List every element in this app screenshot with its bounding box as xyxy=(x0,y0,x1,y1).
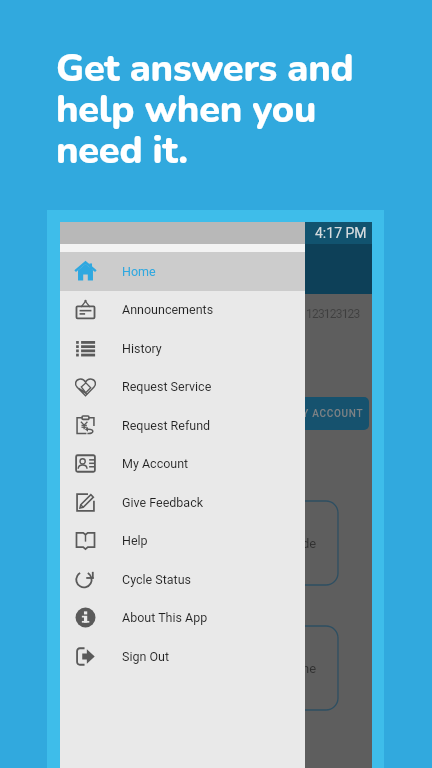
button[interactable]: de xyxy=(240,501,338,585)
button[interactable]: Request Service xyxy=(60,367,305,406)
staticText: Sign Out xyxy=(122,649,170,664)
staticText: Give Feedback xyxy=(122,495,204,510)
staticText: Help xyxy=(122,533,148,548)
staticText: ne xyxy=(302,661,317,676)
staticText: Get answers and xyxy=(56,43,354,95)
staticText: Announcements xyxy=(122,302,214,317)
button[interactable]: About This App xyxy=(60,598,305,637)
staticText: help when you xyxy=(56,84,317,136)
button[interactable]: ne xyxy=(240,626,338,710)
staticText: MY ACCOUNT xyxy=(293,408,364,420)
button[interactable]: Home xyxy=(60,252,305,291)
staticText: History xyxy=(122,341,162,356)
staticText: 4:17 PM xyxy=(315,225,367,241)
button[interactable]: Give Feedback xyxy=(60,483,305,522)
staticText: need it. xyxy=(56,125,188,177)
button[interactable]: History xyxy=(60,329,305,368)
button[interactable]: MY ACCOUNT xyxy=(250,397,369,430)
button[interactable]: Sign Out xyxy=(60,637,305,676)
button[interactable]: Cycle Status xyxy=(60,560,305,599)
staticText: Home xyxy=(122,264,156,279)
button[interactable]: Request Refund xyxy=(60,406,305,445)
staticText: About This App xyxy=(122,610,208,625)
staticText: My Account xyxy=(122,456,189,471)
staticText: 123123123 xyxy=(306,307,360,321)
button[interactable]: My Account xyxy=(60,444,305,483)
staticText: Cycle Status xyxy=(122,572,192,587)
staticText: Request Service xyxy=(122,379,212,394)
staticText: Request Refund xyxy=(122,418,211,433)
staticText: de xyxy=(302,536,317,551)
button[interactable]: Help xyxy=(60,521,305,560)
button[interactable]: Announcements xyxy=(60,290,305,329)
